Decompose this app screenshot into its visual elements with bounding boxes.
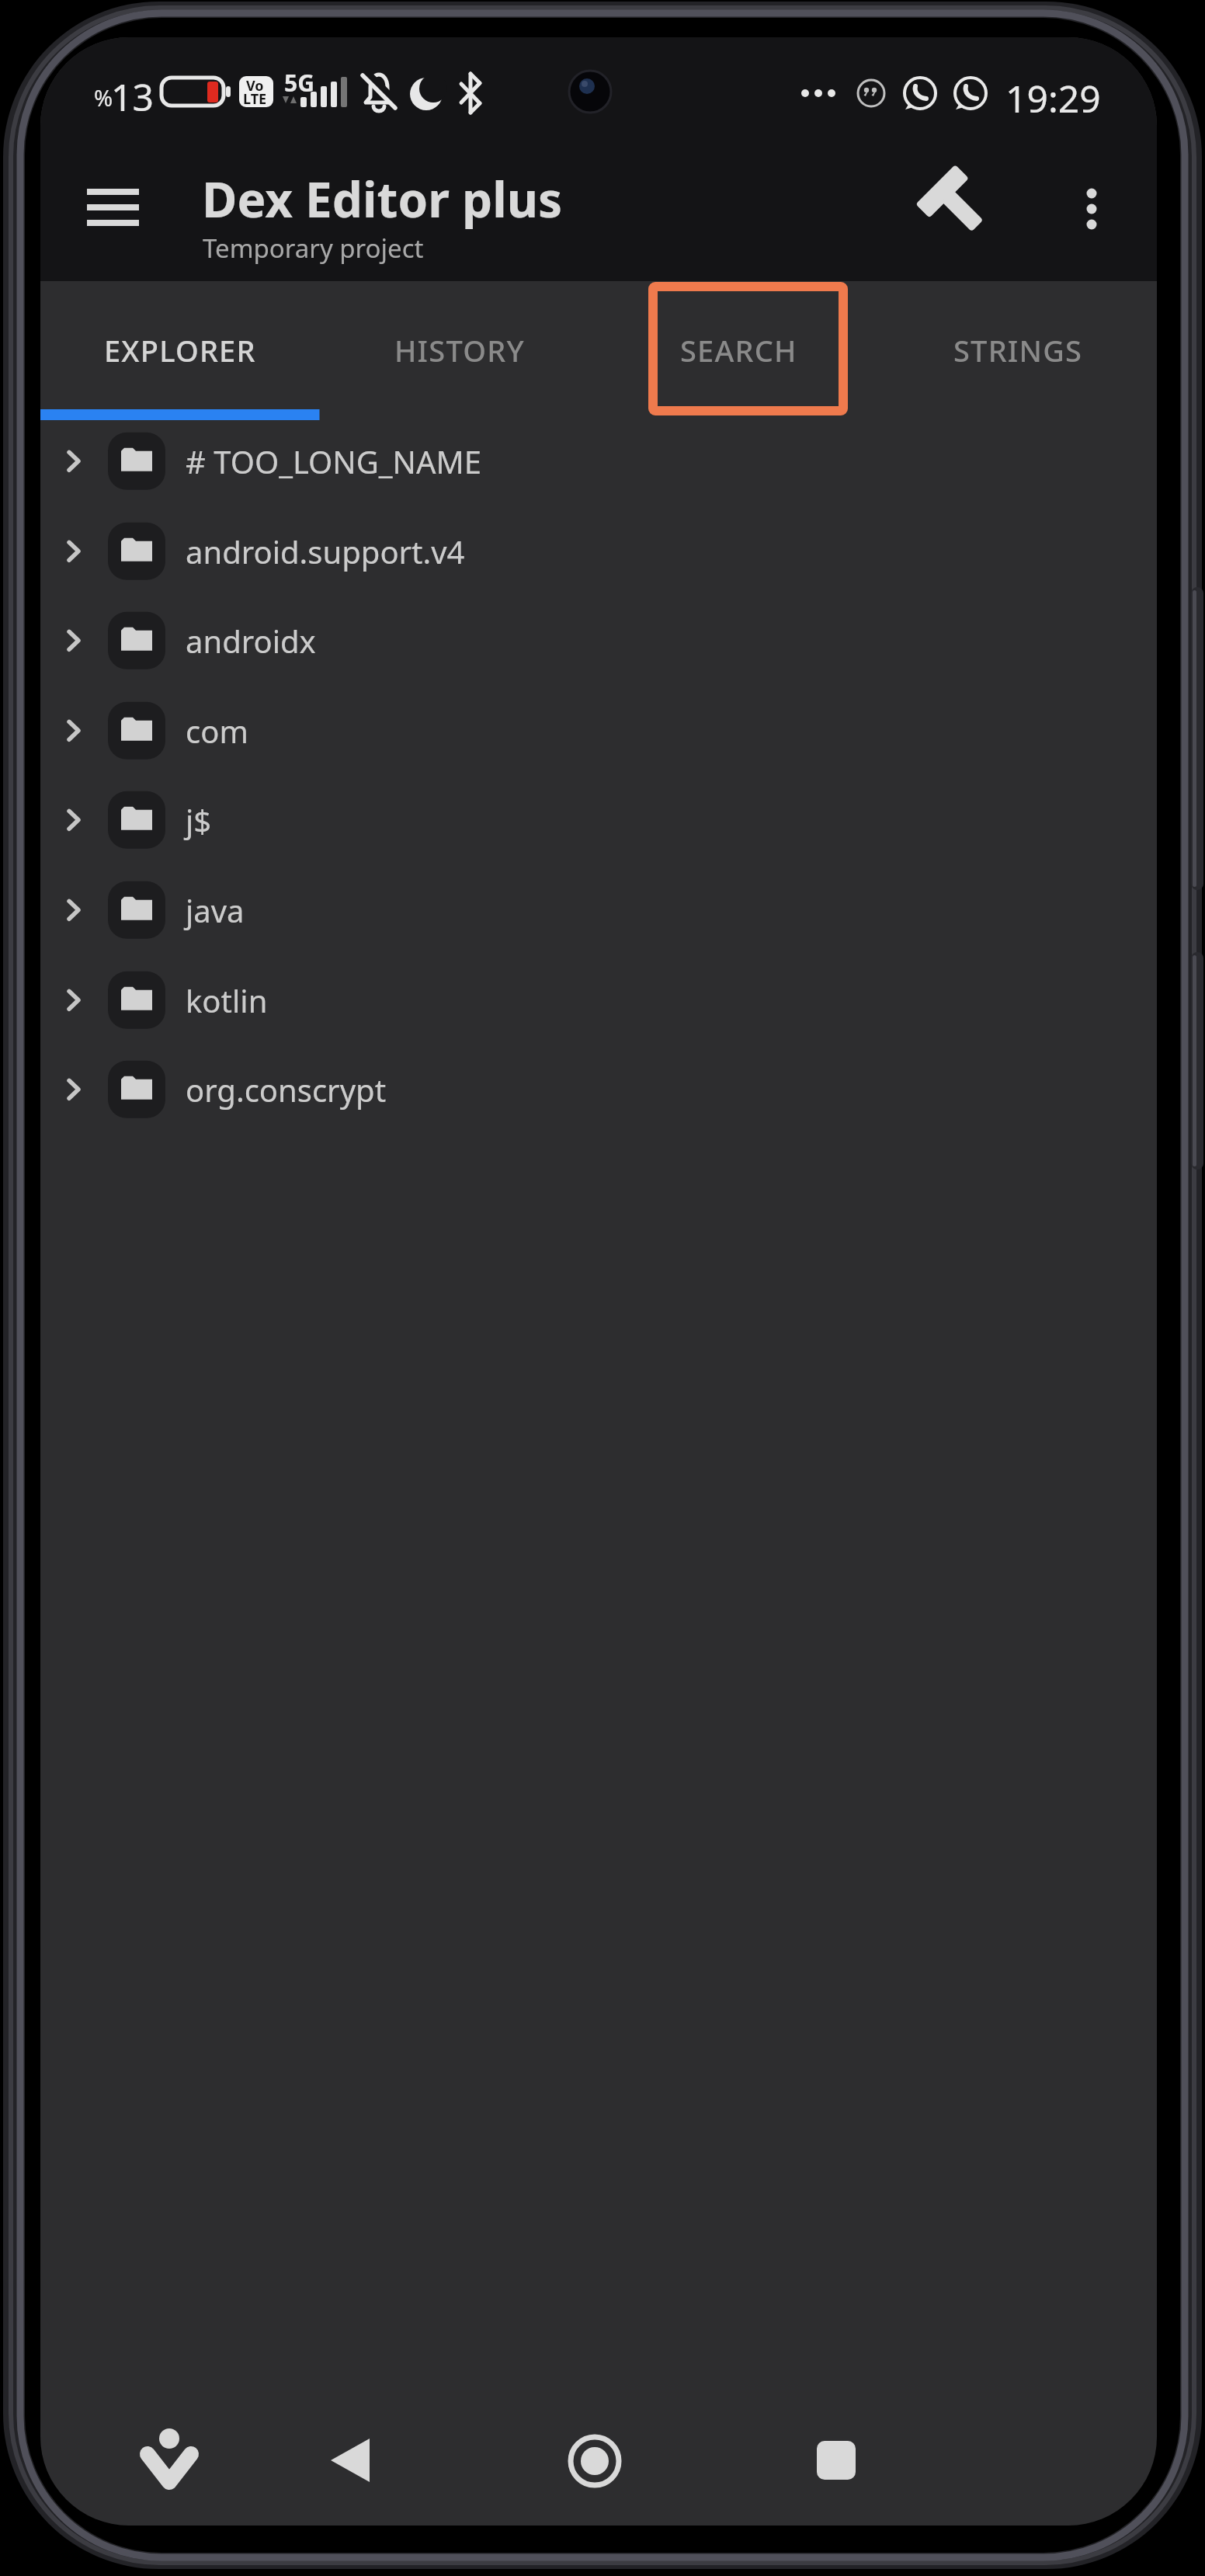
button[interactable]: SEARCH	[599, 281, 878, 419]
staticText: SEARCH	[680, 330, 797, 370]
staticText: j$	[186, 799, 212, 841]
staticText: android.support.v4	[186, 530, 465, 572]
button[interactable]: kotlin	[40, 955, 1157, 1045]
button[interactable]: androidx	[40, 596, 1157, 686]
button[interactable]: java	[40, 865, 1157, 955]
button[interactable]: com	[40, 686, 1157, 776]
staticText: org.conscrypt	[186, 1069, 387, 1111]
staticText: kotlin	[186, 979, 268, 1021]
button[interactable]: org.conscrypt	[40, 1045, 1157, 1135]
button[interactable]	[300, 2410, 401, 2511]
staticText: EXPLORER	[104, 330, 256, 370]
staticText: com	[186, 710, 248, 752]
button[interactable]: # TOO_LONG_NAME	[40, 416, 1157, 506]
staticText: HISTORY	[394, 330, 525, 370]
button[interactable]: EXPLORER	[40, 281, 320, 419]
staticText: java	[186, 889, 245, 931]
button[interactable]: j$	[40, 775, 1157, 865]
staticText: 13	[111, 71, 154, 122]
staticText: STRINGS	[953, 330, 1083, 370]
staticText: %	[94, 82, 113, 113]
staticText: 5G	[284, 67, 314, 99]
button[interactable]	[66, 161, 159, 254]
button[interactable]	[915, 159, 1008, 252]
staticText: Temporary project	[203, 231, 424, 266]
button[interactable]	[786, 2410, 887, 2511]
staticText: # TOO_LONG_NAME	[186, 440, 482, 482]
button[interactable]	[544, 2411, 645, 2512]
staticText: 19:29	[1005, 73, 1101, 123]
button[interactable]: HISTORY	[320, 281, 599, 419]
staticText: Vo	[246, 76, 264, 96]
button[interactable]: android.support.v4	[40, 506, 1157, 596]
button[interactable]	[1045, 162, 1138, 256]
staticText: LTE	[243, 89, 267, 109]
staticText: androidx	[186, 620, 316, 662]
button[interactable]	[119, 2410, 220, 2511]
button[interactable]: STRINGS	[878, 281, 1158, 419]
staticText: Dex Editor plus	[202, 166, 563, 231]
